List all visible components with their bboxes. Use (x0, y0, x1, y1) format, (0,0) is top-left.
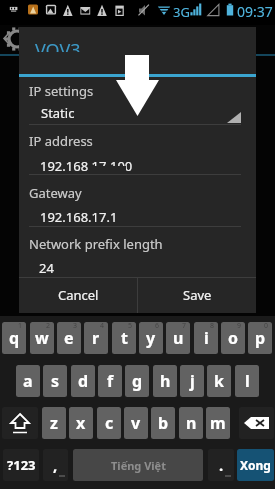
button[interactable]: Shift (2, 407, 38, 439)
staticText: 8 (210, 322, 215, 331)
button[interactable]: t (112, 322, 136, 354)
button[interactable]: p (248, 322, 272, 354)
staticText: g (132, 370, 143, 392)
staticText: , (53, 455, 58, 475)
staticText: y (146, 327, 156, 349)
staticText: ?123 (7, 456, 36, 474)
staticText: Save (183, 286, 212, 304)
staticText: Network prefix length (29, 235, 163, 253)
button[interactable]: r (84, 322, 108, 354)
button[interactable]: Punctuation (208, 449, 234, 481)
staticText: Xong (240, 457, 271, 473)
staticText: b (158, 412, 169, 434)
staticText: . (219, 455, 224, 475)
staticText: q (9, 327, 20, 349)
staticText: w (35, 327, 49, 349)
staticText: s (51, 370, 60, 392)
staticText: VOV3 (35, 43, 81, 52)
staticText: m (210, 412, 226, 434)
button[interactable]: z (42, 407, 66, 439)
staticText: l (245, 370, 250, 392)
button[interactable]: Xong (237, 449, 274, 481)
button[interactable]: u (166, 322, 190, 354)
button[interactable]: h (153, 365, 177, 397)
button[interactable]: Cancel (19, 277, 137, 313)
staticText: 3 (73, 322, 78, 331)
staticText: j (190, 370, 195, 392)
staticText: i (204, 327, 209, 349)
staticText: p (255, 327, 266, 349)
staticText: x (76, 412, 86, 434)
staticText: o (228, 327, 239, 349)
staticText: d (78, 370, 89, 392)
button[interactable]: x (69, 407, 93, 439)
button[interactable]: Tiếng Việt (73, 449, 203, 481)
button[interactable]: f (98, 365, 122, 397)
staticText: Tiếng Việt (111, 458, 166, 473)
staticText: r (92, 327, 100, 349)
button[interactable]: w (30, 322, 54, 354)
staticText: Cancel (58, 286, 99, 304)
button[interactable]: a (16, 365, 40, 397)
button[interactable]: k (207, 365, 231, 397)
staticText: e (64, 327, 74, 349)
staticText: c (105, 412, 114, 434)
staticText: 2 (46, 322, 51, 331)
staticText: 24 (39, 259, 54, 277)
staticText: Static (41, 104, 75, 122)
button[interactable]: e (57, 322, 81, 354)
button[interactable]: i (194, 322, 218, 354)
staticText: 1 (18, 322, 23, 331)
staticText: IP settings (29, 82, 94, 100)
staticText: n (186, 412, 197, 434)
button[interactable]: o (221, 322, 245, 354)
staticText: a (23, 370, 33, 392)
button[interactable]: g (125, 365, 149, 397)
button[interactable]: s (43, 365, 67, 397)
staticText: 6 (155, 322, 160, 331)
button[interactable]: q (2, 322, 26, 354)
staticText: 7 (182, 322, 187, 331)
staticText: 192.168.17.1 (40, 208, 118, 226)
button[interactable]: j (180, 365, 204, 397)
button[interactable]: Save (138, 277, 256, 313)
staticText: z (50, 412, 58, 434)
button[interactable]: d (71, 365, 95, 397)
button[interactable]: b (151, 407, 175, 439)
staticText: 192.168.17.100 (40, 157, 133, 175)
button[interactable]: Punctuation (43, 449, 68, 481)
staticText: 3G (173, 3, 190, 21)
staticText: IP address (29, 132, 93, 150)
staticText: 4 (100, 322, 105, 331)
button[interactable]: Backspace (239, 407, 274, 439)
staticText: 5 (128, 322, 133, 331)
button[interactable]: y (139, 322, 163, 354)
staticText: f (107, 370, 114, 392)
button[interactable]: n (179, 407, 203, 439)
staticText: 09:37 (237, 2, 273, 21)
button[interactable]: l (235, 365, 259, 397)
staticText: h (160, 370, 171, 392)
staticText: k (214, 370, 224, 392)
staticText: t (121, 327, 128, 349)
button[interactable]: m (206, 407, 230, 439)
staticText: 0 (264, 322, 269, 331)
staticText: Gateway (29, 184, 82, 202)
staticText: v (131, 412, 141, 434)
staticText: 9 (237, 322, 242, 331)
button[interactable]: v (124, 407, 148, 439)
button[interactable]: c (97, 407, 121, 439)
staticText: u (173, 327, 184, 349)
button[interactable]: ?123 (3, 449, 39, 481)
